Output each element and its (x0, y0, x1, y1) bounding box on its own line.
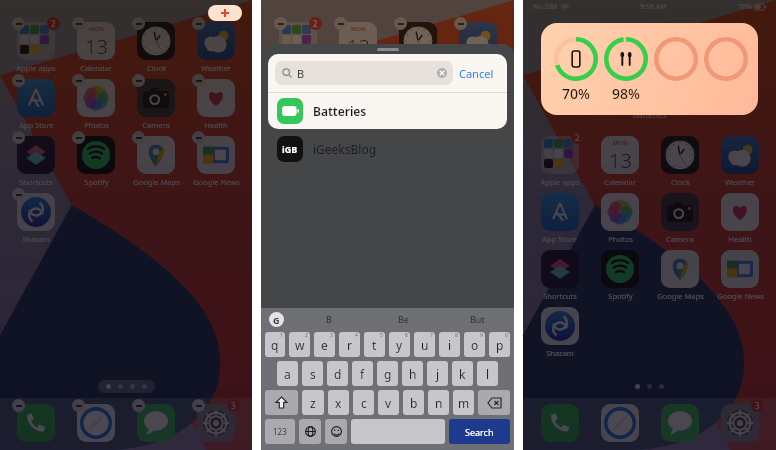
button[interactable]: Remove Calendar (334, 17, 347, 30)
button[interactable]: Cancel (453, 66, 500, 81)
button[interactable]: Messages (661, 404, 699, 442)
button[interactable]: Change language (299, 419, 321, 444)
button[interactable]: e (314, 332, 335, 357)
button[interactable]: Settings (459, 404, 497, 442)
button[interactable] (661, 250, 699, 288)
button[interactable] (541, 136, 579, 174)
button[interactable]: i (439, 332, 460, 357)
button[interactable] (399, 79, 437, 117)
button[interactable]: Remove Phone (12, 399, 25, 412)
button[interactable]: Messages (137, 404, 175, 442)
button[interactable] (541, 250, 579, 288)
button[interactable]: Remove Settings (454, 399, 467, 412)
button[interactable]: Space (351, 419, 445, 444)
button[interactable]: B (291, 308, 366, 330)
button[interactable]: b (403, 390, 424, 415)
button[interactable]: Settings (721, 404, 759, 442)
button[interactable]: Remove App Store (12, 74, 25, 87)
button[interactable]: Emoji (325, 419, 347, 444)
button[interactable]: Google (269, 312, 284, 327)
button[interactable] (661, 136, 699, 174)
button[interactable] (197, 136, 235, 174)
button[interactable] (601, 250, 639, 288)
button[interactable] (459, 22, 497, 60)
button[interactable]: Batteries (268, 93, 507, 129)
button[interactable]: Remove Camera (394, 74, 407, 87)
button[interactable] (601, 193, 639, 231)
button[interactable] (721, 136, 759, 174)
button[interactable]: o (464, 332, 485, 357)
button[interactable]: m (453, 390, 474, 415)
button[interactable]: Settings (197, 404, 235, 442)
button[interactable]: t (364, 332, 385, 357)
button[interactable]: Remove Messages (394, 399, 407, 412)
button[interactable]: 123 (265, 419, 295, 444)
button[interactable] (77, 136, 115, 174)
button[interactable]: B (275, 61, 453, 85)
button[interactable] (339, 79, 377, 117)
button[interactable] (721, 193, 759, 231)
button[interactable]: Be (366, 308, 440, 330)
button[interactable] (197, 79, 235, 117)
button[interactable] (279, 136, 317, 174)
button[interactable] (721, 250, 759, 288)
button[interactable]: Remove Spotify (72, 131, 85, 144)
button[interactable]: Search (449, 419, 510, 444)
button[interactable]: Remove Photos (72, 74, 85, 87)
button[interactable]: Remove Shortcuts (274, 131, 287, 144)
button[interactable]: z (302, 390, 324, 415)
button[interactable]: Phone (17, 404, 55, 442)
button[interactable]: MON (77, 22, 115, 60)
button[interactable]: Remove Phone (274, 399, 287, 412)
button[interactable]: w (289, 332, 310, 357)
button[interactable]: Remove Weather (454, 17, 467, 30)
button[interactable]: Remove Settings (192, 399, 205, 412)
button[interactable]: f (352, 361, 373, 386)
button[interactable]: iGB (261, 129, 514, 169)
button[interactable] (459, 79, 497, 117)
button[interactable]: Remove Messages (132, 399, 145, 412)
button[interactable]: Phone (279, 404, 317, 442)
button[interactable] (137, 22, 175, 60)
button[interactable]: Remove Calendar (72, 17, 85, 30)
button[interactable]: Remove Google Maps (132, 131, 145, 144)
button[interactable]: Remove Safari (334, 399, 347, 412)
button[interactable]: Shift (265, 390, 298, 415)
button[interactable] (541, 307, 579, 345)
button[interactable]: Remove Safari (72, 399, 85, 412)
button[interactable] (197, 22, 235, 60)
button[interactable]: Remove Weather (192, 17, 205, 30)
button[interactable]: s (302, 361, 323, 386)
button[interactable]: a (277, 361, 298, 386)
button[interactable]: Remove Shortcuts (12, 131, 25, 144)
button[interactable]: Messages (399, 404, 437, 442)
button[interactable] (17, 136, 55, 174)
button[interactable]: Remove Google News (192, 131, 205, 144)
button[interactable]: d (327, 361, 348, 386)
button[interactable]: j (427, 361, 448, 386)
button[interactable]: Remove Camera (132, 74, 145, 87)
button[interactable]: Remove Health (454, 74, 467, 87)
button[interactable]: Safari (339, 404, 377, 442)
button[interactable]: u (414, 332, 435, 357)
button[interactable] (661, 193, 699, 231)
button[interactable] (399, 22, 437, 60)
button[interactable] (279, 22, 317, 60)
button[interactable] (279, 79, 317, 117)
button[interactable]: l (477, 361, 498, 386)
button[interactable]: Remove Health (192, 74, 205, 87)
button[interactable] (17, 79, 55, 117)
button[interactable]: Remove Clock (132, 17, 145, 30)
button[interactable] (17, 193, 55, 231)
button[interactable]: p (489, 332, 510, 357)
button[interactable] (137, 79, 175, 117)
button[interactable]: c (353, 390, 374, 415)
button[interactable]: r (339, 332, 360, 357)
button[interactable]: Remove Apple apps (274, 17, 287, 30)
